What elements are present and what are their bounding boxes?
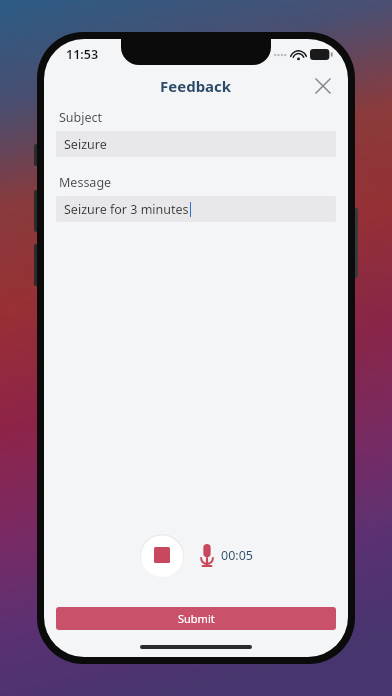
button[interactable]: Submit bbox=[56, 607, 336, 630]
staticText: Feedback bbox=[160, 76, 232, 96]
staticText: Seizure for 3 minutes bbox=[64, 201, 189, 218]
staticText: 11:53 bbox=[66, 46, 99, 63]
staticText: Seizure bbox=[64, 136, 107, 153]
staticText: Message bbox=[59, 174, 112, 191]
other: Microphone bbox=[200, 544, 214, 566]
button[interactable]: Close bbox=[306, 69, 340, 103]
button[interactable]: Seizure for 3 minutes bbox=[56, 196, 336, 222]
staticText: Submit bbox=[178, 611, 215, 626]
button[interactable]: Stop recording bbox=[140, 533, 184, 577]
button[interactable]: Seizure bbox=[56, 131, 336, 157]
staticText: Subject bbox=[59, 109, 103, 126]
staticText: 00:05 bbox=[221, 547, 253, 564]
